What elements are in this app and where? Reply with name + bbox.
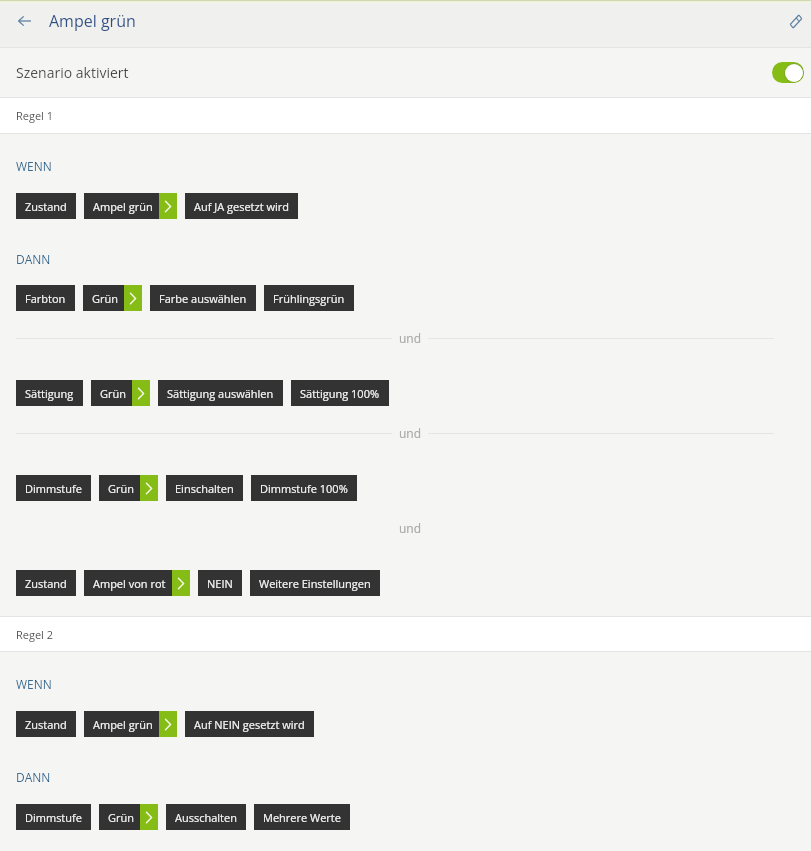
- staticText: Frühlingsgrün: [273, 291, 345, 306]
- staticText: Auf NEIN gesetzt wird: [194, 717, 305, 732]
- staticText: Dimmstufe 100%: [260, 481, 348, 496]
- button[interactable]: Zustand: [16, 711, 76, 737]
- staticText: Ampel grün: [93, 199, 153, 214]
- staticText: Mehrere Werte: [263, 810, 341, 825]
- button[interactable]: Ausschalten: [166, 804, 246, 830]
- staticText: Zustand: [25, 199, 67, 214]
- staticText: Ampel grün: [93, 717, 153, 732]
- staticText: Ampel von rot: [93, 576, 166, 591]
- staticText: Ampel grün: [49, 10, 136, 32]
- staticText: Zustand: [25, 717, 67, 732]
- button[interactable]: Farbton: [16, 285, 75, 311]
- staticText: Auf JA gesetzt wird: [194, 199, 289, 214]
- button[interactable]: Ampel grün: [84, 711, 177, 737]
- button[interactable]: Dimmstufe: [16, 475, 91, 501]
- staticText: Sättigung auswählen: [167, 386, 274, 401]
- staticText: NEIN: [207, 576, 233, 591]
- button[interactable]: Dimmstufe 100%: [251, 475, 357, 501]
- button[interactable]: Edit: [781, 0, 811, 42]
- staticText: Grün: [92, 291, 118, 306]
- button[interactable]: Frühlingsgrün: [264, 285, 354, 311]
- button[interactable]: Grün: [99, 475, 158, 501]
- staticText: DANN: [16, 251, 51, 267]
- button[interactable]: Mehrere Werte: [254, 804, 350, 830]
- staticText: Sättigung: [25, 386, 74, 401]
- staticText: WENN: [16, 676, 52, 692]
- button[interactable]: Farbe auswählen: [150, 285, 256, 311]
- button[interactable]: Grün: [91, 380, 150, 406]
- staticText: Zustand: [25, 576, 67, 591]
- button[interactable]: Grün: [83, 285, 142, 311]
- staticText: und: [399, 425, 422, 441]
- button[interactable]: Sättigung: [16, 380, 83, 406]
- staticText: Dimmstufe: [25, 810, 82, 825]
- staticText: Dimmstufe: [25, 481, 82, 496]
- button[interactable]: Zustand: [16, 193, 76, 219]
- button[interactable]: Sättigung 100%: [291, 380, 389, 406]
- button[interactable]: Ampel grün: [84, 193, 177, 219]
- staticText: Grün: [108, 481, 134, 496]
- staticText: Einschalten: [175, 481, 234, 496]
- staticText: und: [399, 330, 422, 346]
- staticText: Weitere Einstellungen: [259, 576, 371, 591]
- button[interactable]: Weitere Einstellungen: [250, 570, 380, 596]
- staticText: Regel 1: [16, 108, 54, 123]
- staticText: Sättigung 100%: [300, 386, 380, 401]
- staticText: Grün: [108, 810, 134, 825]
- staticText: DANN: [16, 769, 51, 785]
- button[interactable]: Dimmstufe: [16, 804, 91, 830]
- button[interactable]: Sättigung auswählen: [158, 380, 283, 406]
- button[interactable]: Ampel von rot: [84, 570, 190, 596]
- staticText: Farbe auswählen: [159, 291, 247, 306]
- button[interactable]: Auf JA gesetzt wird: [185, 193, 298, 219]
- staticText: Ausschalten: [175, 810, 237, 825]
- staticText: Farbton: [25, 291, 66, 306]
- staticText: Szenario aktiviert: [16, 63, 129, 82]
- staticText: Regel 2: [16, 627, 54, 642]
- button[interactable]: Back: [0, 0, 48, 42]
- button[interactable]: NEIN: [198, 570, 242, 596]
- button[interactable]: Zustand: [16, 570, 76, 596]
- button[interactable]: Szenario aktiviert: [0, 48, 811, 97]
- button[interactable]: Grün: [99, 804, 158, 830]
- staticText: WENN: [16, 158, 52, 174]
- staticText: Grün: [100, 386, 126, 401]
- button[interactable]: Einschalten: [166, 475, 243, 501]
- button[interactable]: Auf NEIN gesetzt wird: [185, 711, 314, 737]
- staticText: und: [399, 520, 422, 536]
